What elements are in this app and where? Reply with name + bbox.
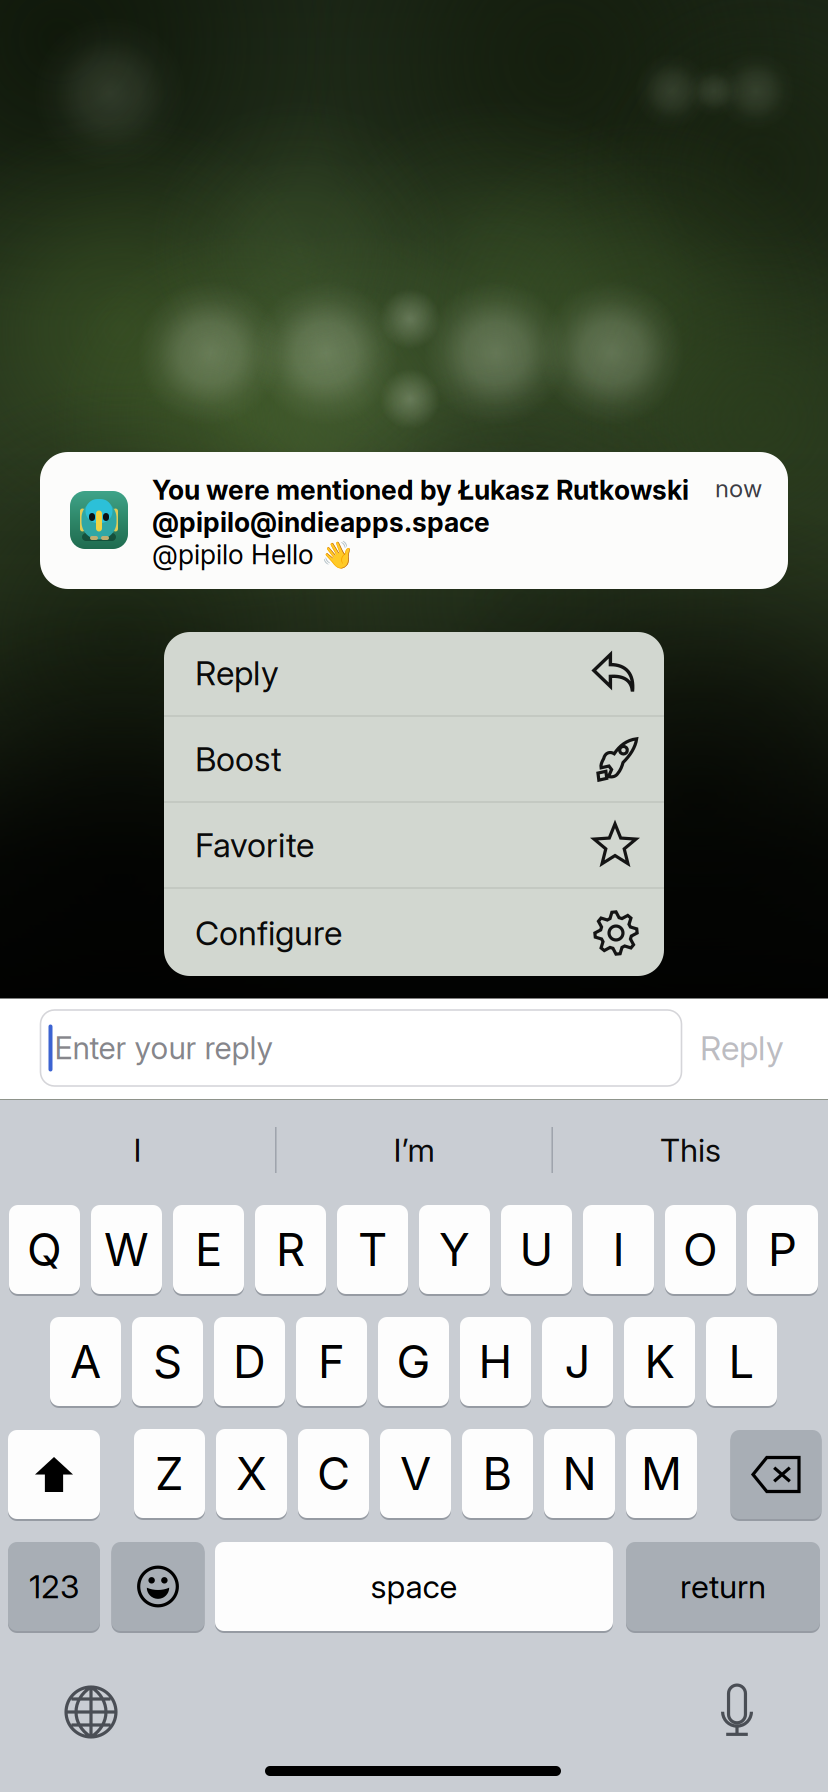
button[interactable]: N — [544, 1429, 615, 1520]
button[interactable]: Dictation — [719, 1686, 755, 1738]
button[interactable]: W — [91, 1205, 162, 1296]
staticText: @pipilo Hello 👋 — [152, 538, 354, 571]
button[interactable]: return — [626, 1542, 820, 1631]
staticText: V — [400, 1446, 431, 1501]
button[interactable]: Boost — [164, 716, 664, 801]
staticText: @pipilo@indieapps.space — [152, 506, 490, 539]
staticText: G — [396, 1334, 430, 1389]
staticText: H — [478, 1334, 512, 1389]
staticText: P — [768, 1222, 797, 1277]
button[interactable]: I — [0, 1106, 275, 1194]
staticText: Reply — [195, 653, 279, 693]
staticText: R — [276, 1222, 305, 1277]
button[interactable]: Z — [134, 1429, 205, 1520]
button[interactable]: T — [337, 1205, 408, 1296]
button[interactable]: J — [542, 1317, 613, 1408]
staticText: B — [482, 1446, 512, 1501]
staticText: L — [728, 1334, 754, 1389]
button[interactable]: S — [132, 1317, 203, 1408]
button[interactable]: H — [460, 1317, 531, 1408]
staticText: space — [370, 1567, 457, 1606]
button[interactable]: O — [665, 1205, 736, 1296]
button[interactable]: E — [173, 1205, 244, 1296]
staticText: This — [660, 1131, 721, 1169]
staticText: You were mentioned by Łukasz Rutkowski — [152, 474, 689, 506]
button[interactable]: X — [216, 1429, 287, 1520]
button[interactable]: K — [624, 1317, 695, 1408]
button[interactable]: U — [501, 1205, 572, 1296]
button[interactable]: A — [50, 1317, 121, 1408]
button[interactable]: L — [706, 1317, 777, 1408]
staticText: F — [318, 1334, 345, 1389]
staticText: D — [233, 1334, 266, 1389]
button[interactable]: V — [380, 1429, 451, 1520]
staticText: M — [641, 1446, 682, 1501]
button[interactable]: Shift — [8, 1430, 100, 1519]
staticText: Configure — [195, 913, 342, 953]
button[interactable]: P — [747, 1205, 818, 1296]
staticText: C — [317, 1446, 350, 1501]
staticText: Y — [439, 1222, 470, 1277]
button[interactable]: G — [378, 1317, 449, 1408]
staticText: Favorite — [195, 825, 314, 865]
staticText: O — [683, 1222, 718, 1277]
button[interactable]: Favorite — [164, 802, 664, 887]
button[interactable]: M — [626, 1429, 697, 1520]
button[interactable]: 123 — [8, 1542, 100, 1631]
staticText: T — [358, 1222, 387, 1277]
staticText: X — [236, 1446, 267, 1501]
button[interactable]: C — [298, 1429, 369, 1520]
staticText: E — [195, 1222, 222, 1277]
staticText: I — [612, 1222, 624, 1277]
button[interactable]: I — [583, 1205, 654, 1296]
button[interactable]: Y — [419, 1205, 490, 1296]
button[interactable]: F — [296, 1317, 367, 1408]
staticText: 123 — [29, 1567, 79, 1606]
staticText: Q — [27, 1222, 62, 1277]
staticText: K — [644, 1334, 674, 1389]
staticText: J — [564, 1334, 590, 1389]
staticText: N — [562, 1446, 596, 1501]
staticText: Boost — [195, 739, 282, 779]
staticText: U — [519, 1222, 553, 1277]
staticText: S — [153, 1334, 182, 1389]
staticText: A — [70, 1334, 101, 1389]
staticText: I’m — [393, 1131, 434, 1169]
button[interactable]: Q — [9, 1205, 80, 1296]
button[interactable]: I’m — [276, 1106, 551, 1194]
button[interactable]: This — [553, 1106, 828, 1194]
button[interactable]: Next keyboard — [65, 1686, 117, 1738]
staticText: Enter your reply — [54, 1029, 272, 1066]
button[interactable]: space — [215, 1542, 613, 1631]
button[interactable]: D — [214, 1317, 285, 1408]
staticText: return — [680, 1567, 766, 1606]
button[interactable]: Configure — [164, 888, 664, 977]
button[interactable]: B — [462, 1429, 533, 1520]
staticText: now — [715, 474, 762, 503]
button[interactable]: Delete — [730, 1430, 821, 1519]
staticText: Reply — [700, 1028, 784, 1068]
staticText: I — [134, 1131, 142, 1169]
button[interactable]: Reply — [164, 630, 664, 715]
button[interactable]: Enter your reply — [40, 1010, 681, 1086]
button[interactable]: Emoji — [111, 1542, 204, 1631]
button[interactable]: Reply — [672, 1010, 812, 1086]
staticText: W — [104, 1222, 149, 1277]
button[interactable]: R — [255, 1205, 326, 1296]
staticText: Z — [155, 1446, 184, 1501]
button[interactable]: You were mentioned by Łukasz Rutkowski — [40, 452, 788, 589]
